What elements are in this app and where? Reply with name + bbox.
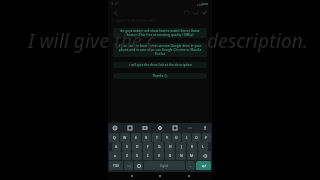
button[interactable]: i will give the drive link at the descri… <box>113 62 207 68</box>
staticText: O <box>195 135 198 140</box>
button[interactable]: Back <box>111 8 120 17</box>
button[interactable]: ?123 <box>109 161 123 170</box>
button[interactable]: Home <box>155 172 165 180</box>
button[interactable]: More <box>186 124 194 132</box>
staticText: H <box>169 144 172 149</box>
button[interactable]: S <box>122 142 131 151</box>
button[interactable]: K <box>187 142 197 151</box>
button[interactable]: E <box>131 133 141 142</box>
button[interactable]: D <box>132 142 142 151</box>
button[interactable]: X <box>132 151 142 160</box>
button[interactable]: Theme <box>171 124 179 132</box>
button[interactable]: Redo <box>191 8 200 17</box>
button[interactable]: W <box>120 133 130 142</box>
staticText: T <box>156 135 158 140</box>
button[interactable]: Z <box>122 151 131 160</box>
staticText: R <box>145 135 148 140</box>
staticText: J <box>181 144 182 149</box>
staticText: P <box>205 135 208 140</box>
staticText: L <box>202 144 204 149</box>
staticText: 9:41 <box>111 1 119 6</box>
staticText: S <box>126 144 128 149</box>
staticText: W <box>123 135 127 140</box>
staticText: ?123 <box>113 164 119 168</box>
button[interactable]: J <box>176 142 186 151</box>
button[interactable]: A <box>112 142 121 151</box>
staticText: I <box>186 135 188 140</box>
button[interactable]: do guys today i will show how to watch S… <box>113 28 207 38</box>
button[interactable]: Y <box>162 133 171 142</box>
button[interactable]: I <box>182 133 191 142</box>
button[interactable]: H <box>165 142 175 151</box>
button[interactable]: M <box>187 151 197 160</box>
button[interactable]: Settings <box>156 124 164 132</box>
staticText: Y <box>166 135 168 140</box>
staticText: do guys today i will show how to watch S… <box>116 29 204 37</box>
button[interactable]: English <box>144 161 185 170</box>
staticText: X <box>136 153 139 158</box>
button[interactable]: . <box>186 161 195 170</box>
staticText: U <box>175 135 178 140</box>
button[interactable]: Enter <box>196 161 211 170</box>
staticText: Q <box>113 135 116 140</box>
button[interactable]: Shift <box>109 151 121 160</box>
button[interactable]: F <box>143 142 153 151</box>
staticText: . <box>190 163 191 168</box>
button[interactable]: Emoji <box>134 161 143 170</box>
staticText: N <box>180 153 183 158</box>
button[interactable]: GIF <box>126 124 134 132</box>
button[interactable]: N <box>176 151 186 160</box>
button[interactable]: V <box>154 151 164 160</box>
staticText: Thanks 😊 <box>152 74 168 78</box>
button[interactable]: T <box>152 133 161 142</box>
button[interactable]: C <box>143 151 153 160</box>
staticText: i will give the drive link at the descri… <box>129 63 192 67</box>
staticText: A <box>115 144 118 149</box>
button[interactable]: Q <box>109 133 119 142</box>
button[interactable]: O <box>192 133 201 142</box>
staticText: G <box>158 144 161 149</box>
staticText: Z <box>126 153 128 158</box>
staticText: D <box>136 144 139 149</box>
staticText: F <box>147 144 149 149</box>
button[interactable]: ii just need to have Latest version Goog… <box>113 43 207 57</box>
button[interactable]: Undo <box>182 8 191 17</box>
button[interactable]: Clipboard <box>111 124 119 132</box>
button[interactable]: Done <box>200 8 209 17</box>
staticText: English <box>160 164 169 168</box>
button[interactable]: Thanks 😊 <box>113 73 207 79</box>
staticText: I will give the c <box>28 28 156 54</box>
staticText: 21 April 3:15 PM (5h 54m/48) <box>112 19 154 23</box>
staticText: C <box>147 153 150 158</box>
button[interactable]: Sticker <box>141 124 149 132</box>
button[interactable]: G <box>154 142 164 151</box>
button[interactable]: Mic <box>201 124 209 132</box>
staticText: M <box>190 153 194 158</box>
staticText: K <box>191 144 194 149</box>
button[interactable]: L <box>198 142 208 151</box>
button[interactable]: B <box>165 151 175 160</box>
staticText: V <box>158 153 161 158</box>
staticText: E <box>135 135 137 140</box>
button[interactable]: U <box>172 133 181 142</box>
button[interactable]: Recents <box>127 172 137 180</box>
staticText: ii just need to have Latest version Goog… <box>116 44 204 56</box>
staticText: B <box>169 153 172 158</box>
button[interactable]: Back <box>184 172 194 180</box>
button[interactable]: Emoji symbols <box>124 161 133 170</box>
button[interactable]: Backspace <box>198 151 211 160</box>
button[interactable]: R <box>142 133 151 142</box>
button[interactable]: P <box>202 133 211 142</box>
staticText: description. <box>207 28 308 54</box>
